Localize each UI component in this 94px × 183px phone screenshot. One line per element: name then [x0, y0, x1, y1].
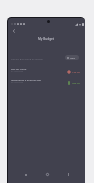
- staticText: TRACK BALANCE & SPEND: [11, 57, 43, 60]
- button[interactable]: Home: [43, 170, 52, 179]
- staticText: 400.00: [72, 81, 80, 84]
- button[interactable]: 400.00: [67, 80, 80, 85]
- button[interactable]: 120.00: [67, 69, 80, 74]
- staticText: 120.00: [72, 70, 80, 73]
- staticText: 27 Nov 2023: [11, 70, 24, 73]
- button[interactable]: Add: [65, 55, 79, 60]
- button[interactable]: Back: [21, 170, 30, 179]
- button[interactable]: Recent apps: [64, 170, 73, 179]
- staticText: My Budget: [38, 37, 55, 41]
- button[interactable]: Navigate up: [10, 27, 18, 35]
- staticText: 26 Nov 2023: [11, 81, 24, 84]
- staticText: pay for cloud: [11, 67, 27, 70]
- staticText: developing a android app: [11, 78, 41, 81]
- staticText: Add: [70, 56, 75, 59]
